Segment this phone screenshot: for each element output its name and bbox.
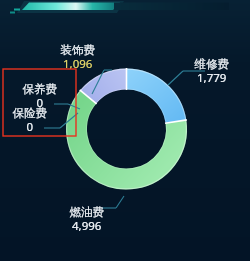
button[interactable]: Expense donut chart — [0, 0, 250, 261]
